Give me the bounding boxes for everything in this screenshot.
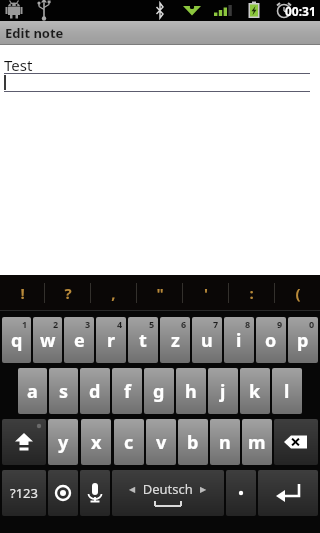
button[interactable]: h [176,368,206,414]
button[interactable]: ◀ [112,470,224,516]
button[interactable]: s [49,368,78,414]
staticText: s [59,379,69,404]
button[interactable]: p [288,317,318,363]
staticText: m [248,430,266,455]
staticText: t [139,328,147,353]
button[interactable]: a [18,368,47,414]
staticText: f [124,379,131,404]
button[interactable]: , [91,275,136,311]
staticText: ( [295,283,301,303]
button[interactable]: Input method [48,470,78,516]
staticText: c [124,430,134,455]
staticText: ◀ [129,485,136,494]
staticText: 00:31 [285,3,316,19]
button[interactable]: ! [0,275,44,311]
staticText: e [74,328,85,353]
staticText: u [201,328,213,353]
staticText: 3 [85,318,91,330]
button[interactable]: Test [0,45,320,275]
button[interactable]: ' [183,275,228,311]
button[interactable]: Delete [274,419,318,465]
staticText: i [236,328,242,353]
staticText: o [265,328,277,353]
button[interactable]: Enter [258,470,318,516]
button[interactable]: g [144,368,174,414]
staticText: l [284,379,290,404]
staticText: ? [64,283,72,303]
staticText: j [220,379,226,404]
button[interactable]: i [224,317,254,363]
staticText: y [58,430,69,455]
staticText: Test [4,55,33,75]
button[interactable]: u [192,317,222,363]
button[interactable]: ? [45,275,90,311]
button[interactable]: k [240,368,270,414]
staticText: : [249,283,254,303]
staticText: " [156,283,164,303]
staticText: ' [204,283,208,303]
button[interactable]: f [112,368,142,414]
staticText: 9 [277,318,283,330]
staticText: b [187,430,199,455]
button[interactable]: v [146,419,176,465]
button[interactable]: : [229,275,274,311]
button[interactable]: Voice input [80,470,110,516]
staticText: ▶ [200,485,207,494]
staticText: 1 [22,318,28,330]
button[interactable]: Symbols [2,470,46,516]
button[interactable]: n [210,419,240,465]
staticText: v [156,430,167,455]
staticText: r [107,328,116,353]
staticText: 7 [213,318,219,330]
staticText: 6 [181,318,187,330]
staticText: d [89,379,101,404]
button[interactable]: Shift [2,419,46,465]
staticText: 0 [309,318,315,330]
staticText: n [219,430,231,455]
staticText: w [40,328,56,353]
button[interactable]: m [242,419,272,465]
button[interactable]: x [81,419,111,465]
staticText: ! [20,283,25,303]
staticText: , [111,283,116,303]
staticText: p [297,328,309,353]
staticText: Deutsch [136,480,200,498]
button[interactable]: j [208,368,238,414]
staticText: k [249,379,261,404]
button[interactable]: " [137,275,182,311]
button[interactable]: b [178,419,208,465]
staticText: z [171,328,180,353]
button[interactable]: q [2,317,31,363]
staticText: 8 [245,318,251,330]
button[interactable]: r [96,317,126,363]
staticText: x [91,430,102,455]
staticText: q [11,328,23,353]
button[interactable]: w [33,317,62,363]
button[interactable]: o [256,317,286,363]
button[interactable]: z [160,317,190,363]
staticText: 5 [149,318,155,330]
button[interactable]: l [272,368,302,414]
staticText: ?123 [10,484,38,502]
staticText: 2 [53,318,59,330]
button[interactable]: y [48,419,78,465]
button[interactable]: ( [275,275,320,311]
button[interactable]: c [114,419,144,465]
button[interactable]: d [80,368,110,414]
staticText: Edit note [5,24,64,42]
staticText: a [27,379,38,404]
button[interactable]: e [64,317,94,363]
staticText: g [153,379,165,404]
button[interactable]: t [128,317,158,363]
staticText: h [185,379,197,404]
button[interactable]: Period [226,470,256,516]
staticText: 4 [117,318,123,330]
